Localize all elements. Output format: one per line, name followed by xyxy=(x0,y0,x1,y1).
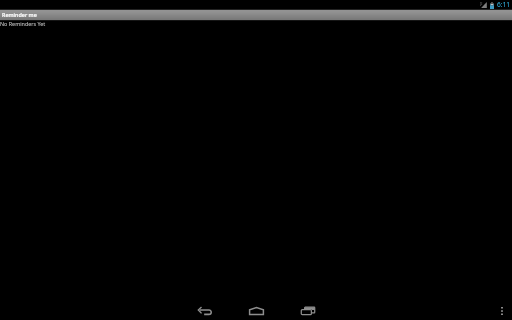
other: Mobile signal strength xyxy=(480,2,487,8)
staticText: 6:11 xyxy=(497,0,511,9)
other: Battery level xyxy=(490,2,494,9)
button[interactable]: Home xyxy=(246,303,266,319)
button[interactable]: More options xyxy=(495,303,509,319)
staticText: No Reminders Yet xyxy=(0,20,46,27)
button[interactable]: Recent apps xyxy=(298,303,318,319)
button[interactable]: Reminder me xyxy=(0,10,40,20)
staticText: Reminder me xyxy=(2,11,37,18)
button[interactable]: Back xyxy=(195,303,215,319)
